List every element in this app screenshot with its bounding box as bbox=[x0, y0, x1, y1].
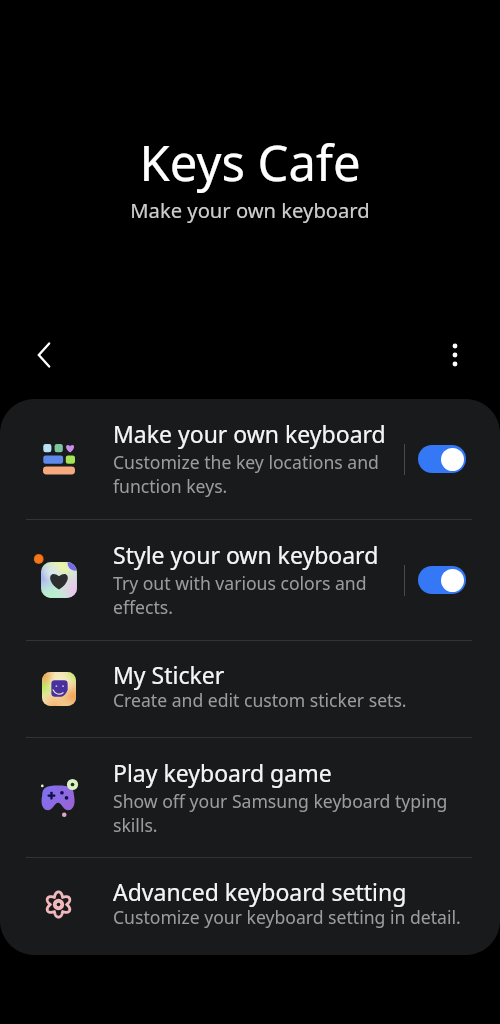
button[interactable]: My Sticker bbox=[0, 641, 500, 737]
button[interactable]: Style your own keyboard bbox=[0, 520, 500, 640]
button[interactable]: Make your own keyboard bbox=[0, 399, 500, 519]
button[interactable]: Toggle bbox=[418, 566, 466, 594]
button[interactable]: Navigate up bbox=[21, 332, 67, 378]
staticText: Keys Cafe bbox=[0, 129, 500, 196]
staticText: Make your own keyboard bbox=[113, 418, 386, 449]
button[interactable]: Play keyboard game bbox=[0, 738, 500, 857]
staticText: Advanced keyboard setting bbox=[113, 876, 407, 907]
button[interactable]: Advanced keyboard setting bbox=[0, 858, 500, 954]
staticText: Customize the key locations and function… bbox=[113, 450, 398, 498]
staticText: Play keyboard game bbox=[113, 757, 332, 788]
staticText: Customize your keyboard setting in detai… bbox=[113, 905, 473, 929]
staticText: Create and edit custom sticker sets. bbox=[113, 688, 473, 712]
button[interactable]: Toggle bbox=[418, 445, 466, 473]
staticText: Show off your Samsung keyboard typing sk… bbox=[113, 789, 463, 837]
staticText: Make your own keyboard bbox=[0, 196, 500, 224]
staticText: My Sticker bbox=[113, 659, 225, 690]
staticText: Try out with various colors and effects. bbox=[113, 571, 398, 619]
button[interactable]: More options bbox=[432, 332, 478, 378]
staticText: Style your own keyboard bbox=[113, 539, 379, 570]
